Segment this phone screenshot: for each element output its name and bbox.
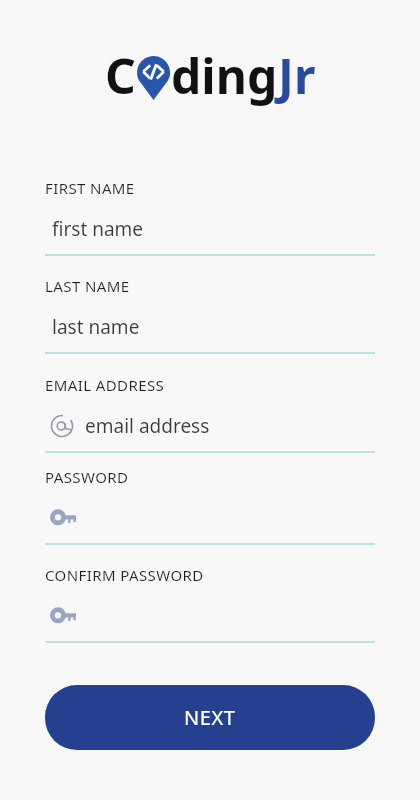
button[interactable]: CONFIRM PASSWORD: [45, 565, 375, 643]
staticText: C: [105, 43, 136, 108]
button[interactable]: FIRST NAME: [45, 178, 375, 256]
staticText: EMAIL ADDRESS: [45, 375, 165, 395]
staticText: ding: [171, 43, 278, 108]
staticText: LAST NAME: [45, 276, 130, 296]
button[interactable]: EMAIL ADDRESS: [45, 375, 375, 453]
staticText: Jr: [278, 43, 316, 108]
other: Password: [50, 608, 76, 624]
button[interactable]: NEXT: [45, 685, 375, 750]
button[interactable]: LAST NAME: [45, 276, 375, 354]
staticText: email address: [85, 413, 210, 439]
staticText: NEXT: [184, 704, 236, 731]
other: Email: [50, 414, 74, 438]
button[interactable]: PASSWORD: [45, 467, 375, 545]
staticText: last name: [52, 314, 140, 340]
staticText: first name: [52, 216, 144, 242]
staticText: PASSWORD: [45, 467, 129, 487]
staticText: CONFIRM PASSWORD: [45, 565, 204, 585]
staticText: FIRST NAME: [45, 178, 135, 198]
other: Password: [50, 510, 76, 526]
